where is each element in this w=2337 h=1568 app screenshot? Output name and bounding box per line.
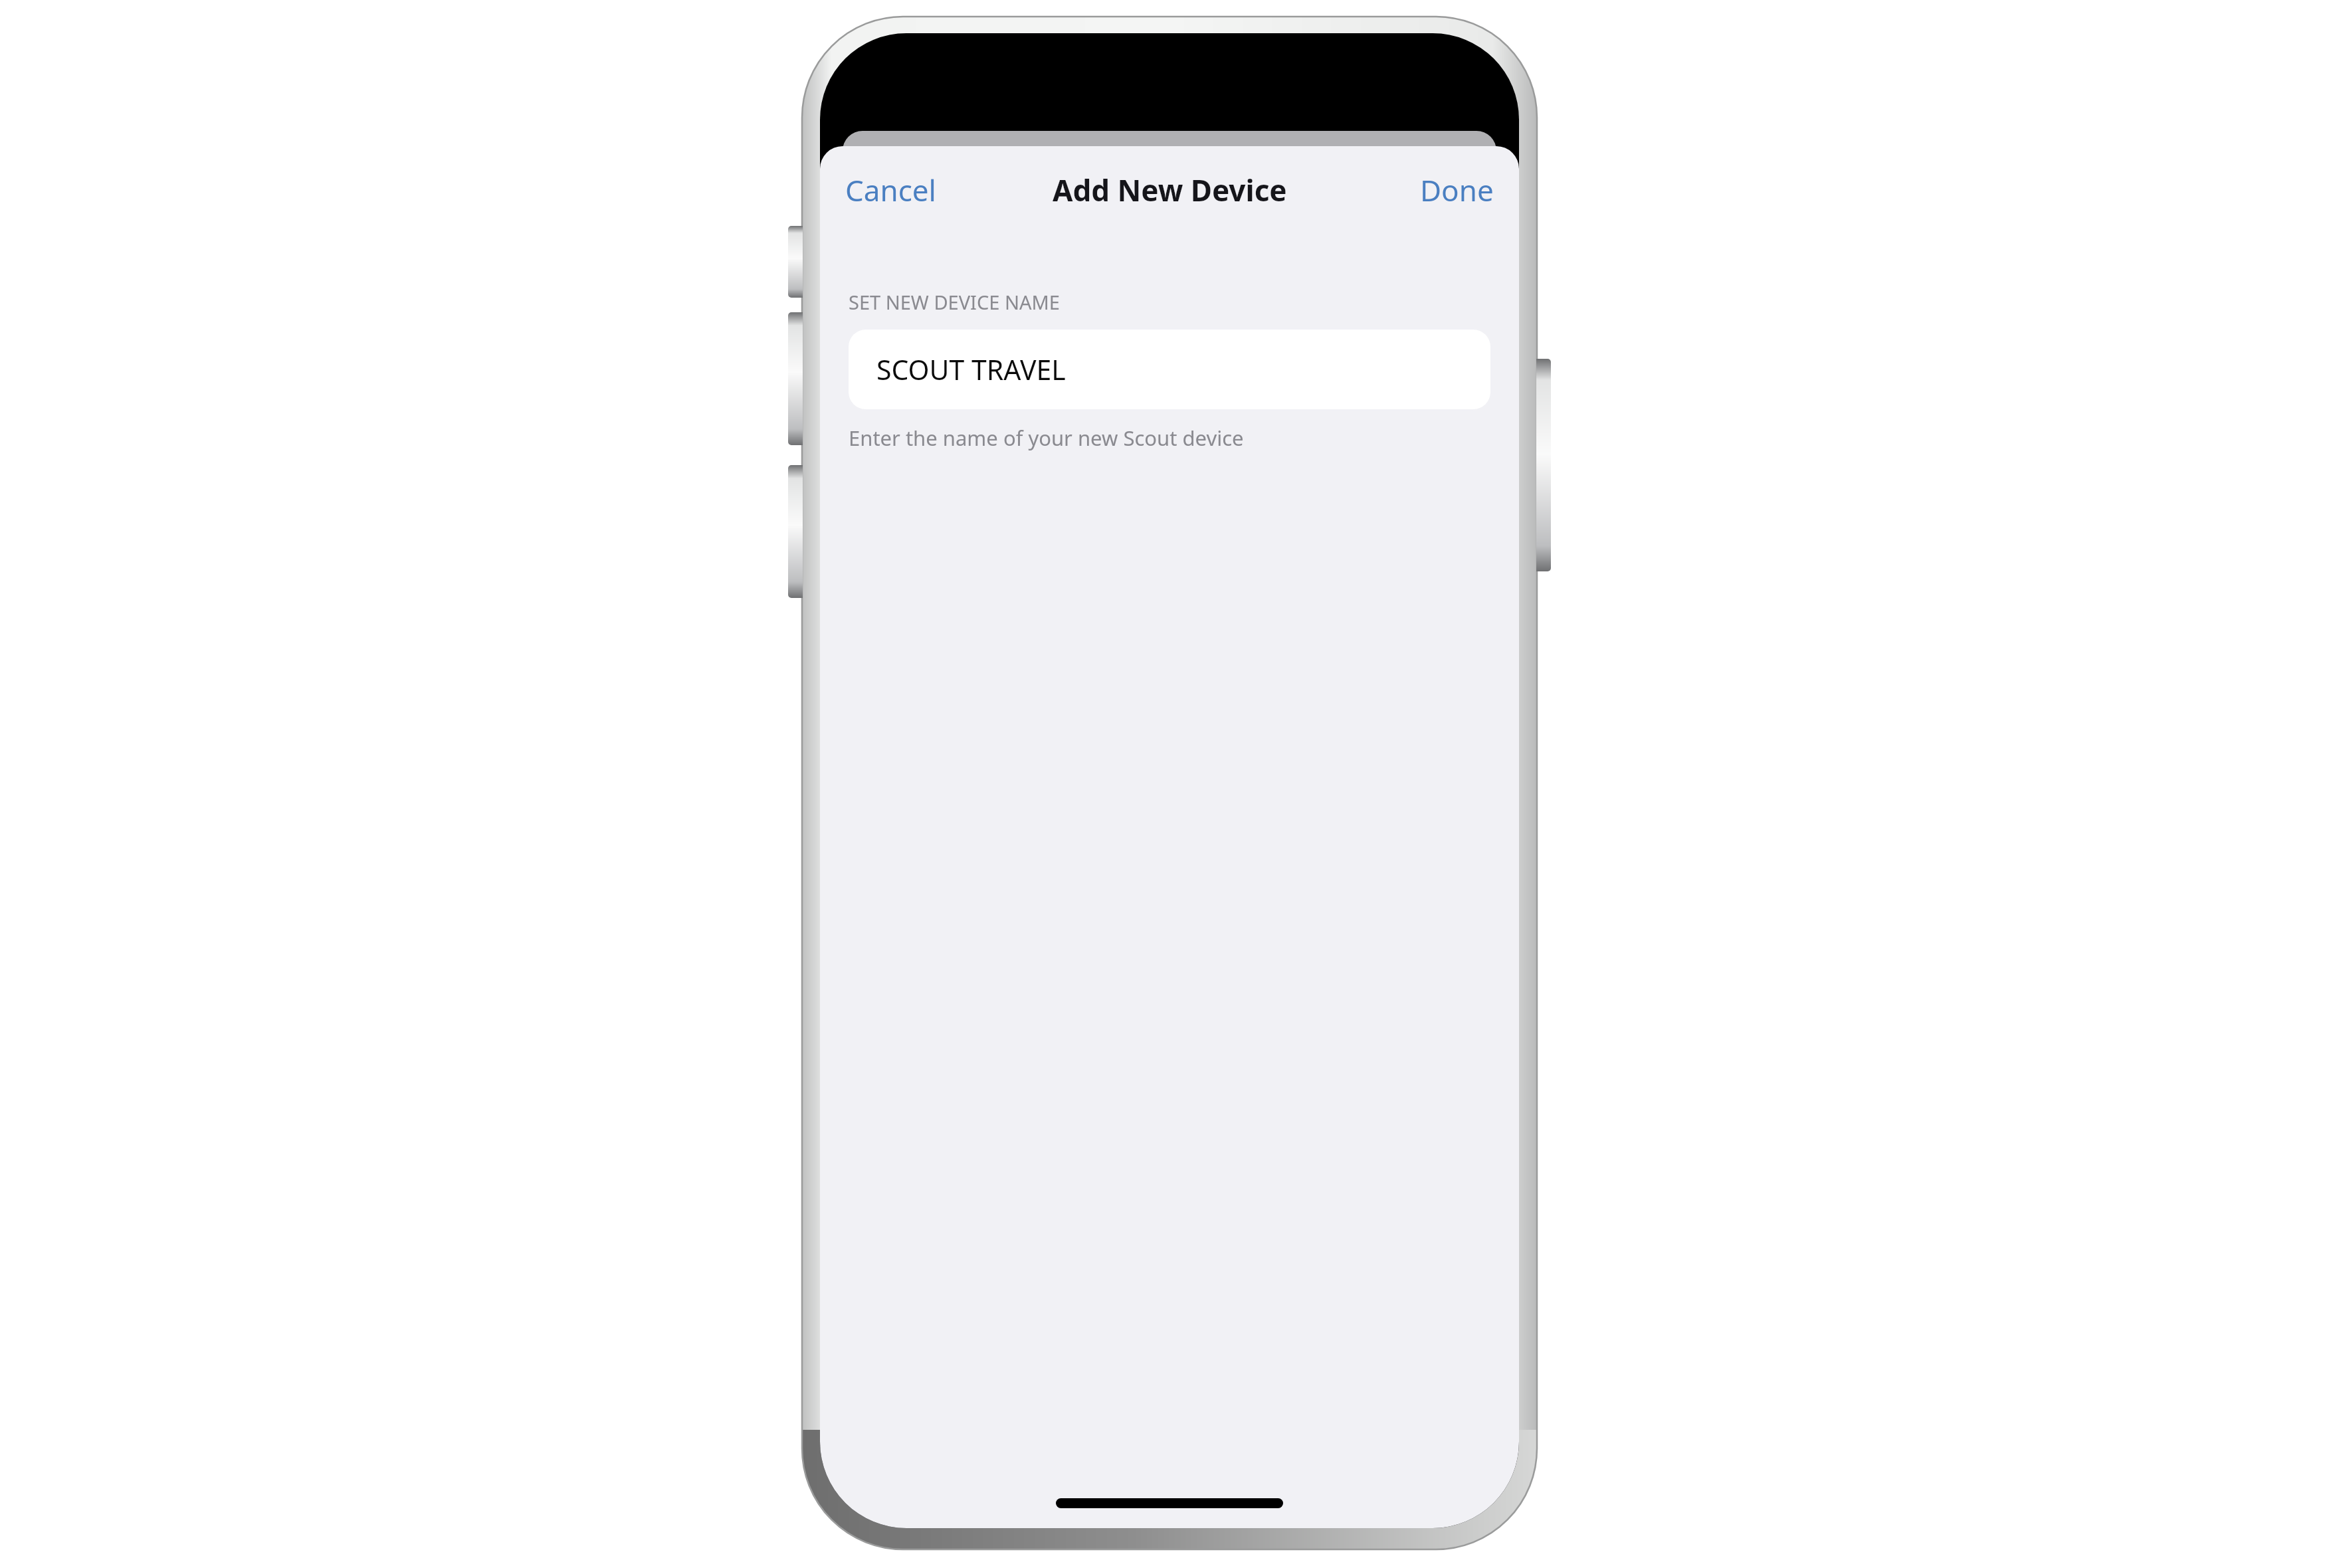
other: Home indicator bbox=[1056, 1498, 1283, 1508]
button[interactable]: Cancel bbox=[835, 162, 947, 218]
button[interactable]: Done bbox=[1409, 162, 1504, 218]
staticText: Enter the name of your new Scout device bbox=[849, 424, 1244, 452]
staticText: Add New Device bbox=[1053, 170, 1287, 210]
staticText: SET NEW DEVICE NAME bbox=[849, 289, 1060, 315]
staticText: Done bbox=[1420, 170, 1494, 210]
staticText: Cancel bbox=[845, 170, 936, 210]
button[interactable]: SCOUT TRAVEL bbox=[849, 330, 1490, 409]
staticText: SCOUT TRAVEL bbox=[876, 351, 1066, 388]
